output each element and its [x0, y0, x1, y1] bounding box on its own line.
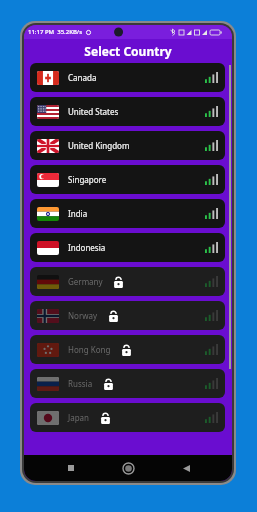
button[interactable]: Recent apps [60, 457, 82, 479]
staticText: India [68, 208, 88, 219]
staticText: Germany [68, 276, 103, 287]
button[interactable]: Singapore [30, 165, 225, 194]
staticText: Indonesia [68, 242, 106, 253]
button[interactable]: Germany [30, 267, 225, 296]
staticText: United States [68, 106, 119, 117]
button[interactable]: India [30, 199, 225, 228]
staticText: 11:17 PM 35.2KB/s [28, 28, 83, 36]
button[interactable]: Hong Kong [30, 335, 225, 364]
button[interactable]: Home [117, 457, 139, 479]
staticText: United Kingdom [68, 140, 130, 151]
staticText: Hong Kong [68, 344, 111, 355]
button[interactable]: United States [30, 97, 225, 126]
staticText: Singapore [68, 174, 107, 185]
button[interactable]: United Kingdom [30, 131, 225, 160]
button[interactable]: Back [175, 457, 197, 479]
staticText: Select Country [84, 43, 172, 59]
button[interactable]: Indonesia [30, 233, 225, 262]
button[interactable]: Norway [30, 301, 225, 330]
button[interactable]: Japan [30, 403, 225, 432]
staticText: Japan [68, 412, 90, 423]
staticText: Canada [68, 72, 97, 83]
staticText: Norway [68, 310, 98, 321]
staticText: Russia [68, 378, 93, 389]
button[interactable]: Canada [30, 63, 225, 92]
button[interactable]: Russia [30, 369, 225, 398]
